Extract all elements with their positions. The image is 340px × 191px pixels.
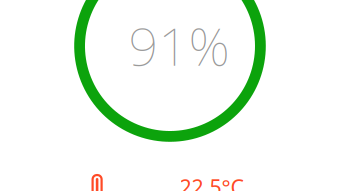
staticText: 22.5°C [180,173,244,191]
staticText: 91% [128,11,229,80]
button[interactable]: 22.5°C [92,174,244,191]
